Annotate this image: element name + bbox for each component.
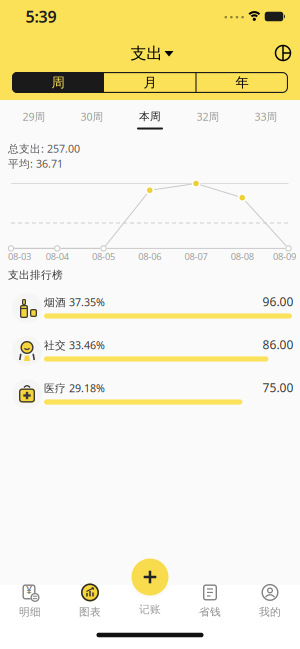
staticText: 支出排行榜 <box>8 268 63 282</box>
button[interactable]: 周 <box>12 72 104 93</box>
staticText: 明细 <box>19 605 41 618</box>
staticText: 总支出: 257.00 <box>8 141 80 156</box>
staticText: 年 <box>235 74 248 91</box>
staticText: 08-08 <box>231 250 254 263</box>
staticText: 86.00 <box>262 336 293 352</box>
staticText: 医疗 29.18% <box>44 381 105 395</box>
button[interactable]: 月 <box>104 72 196 93</box>
staticText: 96.00 <box>262 293 293 309</box>
staticText: 月 <box>143 74 156 91</box>
staticText: 08-03 <box>8 250 31 263</box>
button[interactable]: 33周 <box>241 103 291 129</box>
staticText: 平均: 36.71 <box>8 156 63 171</box>
staticText: 33周 <box>254 109 277 124</box>
button[interactable]: 饼图统计 <box>274 44 292 62</box>
button[interactable]: 支出 <box>130 44 173 63</box>
staticText: 08-05 <box>92 250 115 263</box>
staticText: 图表 <box>79 605 101 618</box>
button[interactable]: 记账 <box>131 558 168 595</box>
staticText: 记账 <box>139 603 161 616</box>
staticText: 周 <box>51 74 64 91</box>
staticText: 29周 <box>22 109 45 124</box>
button[interactable]: 本周 <box>125 103 175 129</box>
button[interactable]: 30周 <box>67 103 117 129</box>
staticText: 5:39 <box>25 6 56 27</box>
button[interactable]: 29周 <box>9 103 59 129</box>
staticText: 08-09 <box>273 250 296 263</box>
button[interactable]: 省钱 <box>182 578 238 622</box>
staticText: 08-07 <box>184 250 207 263</box>
button[interactable]: 图表 <box>62 578 118 622</box>
staticText: 08-06 <box>138 250 161 263</box>
staticText: 75.00 <box>262 379 293 395</box>
staticText: 08-04 <box>46 250 69 263</box>
staticText: 省钱 <box>199 605 221 618</box>
staticText: 支出 <box>130 44 162 63</box>
staticText: 30周 <box>80 109 103 124</box>
button[interactable]: 我的 <box>242 578 298 622</box>
staticText: 本周 <box>139 110 161 123</box>
staticText: ¥ <box>26 583 32 597</box>
staticText: 烟酒 37.35% <box>44 295 105 309</box>
staticText: 社交 33.46% <box>44 338 105 352</box>
staticText: 32周 <box>196 109 219 124</box>
staticText: 我的 <box>259 605 281 618</box>
button[interactable]: ¥ <box>2 578 58 622</box>
button[interactable]: 年 <box>196 72 288 93</box>
button[interactable]: 32周 <box>183 103 233 129</box>
